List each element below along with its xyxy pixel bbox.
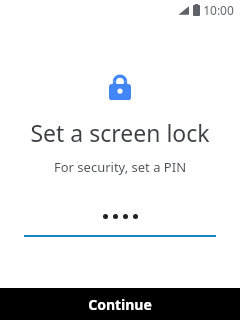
staticText: 10:00 (203, 2, 234, 18)
button[interactable]: Continue (0, 288, 240, 320)
button[interactable] (24, 206, 216, 237)
other: Screen lock (109, 74, 131, 100)
staticText: Set a screen lock (0, 117, 240, 148)
staticText: Continue (88, 295, 152, 314)
staticText: For security, set a PIN (0, 158, 240, 176)
